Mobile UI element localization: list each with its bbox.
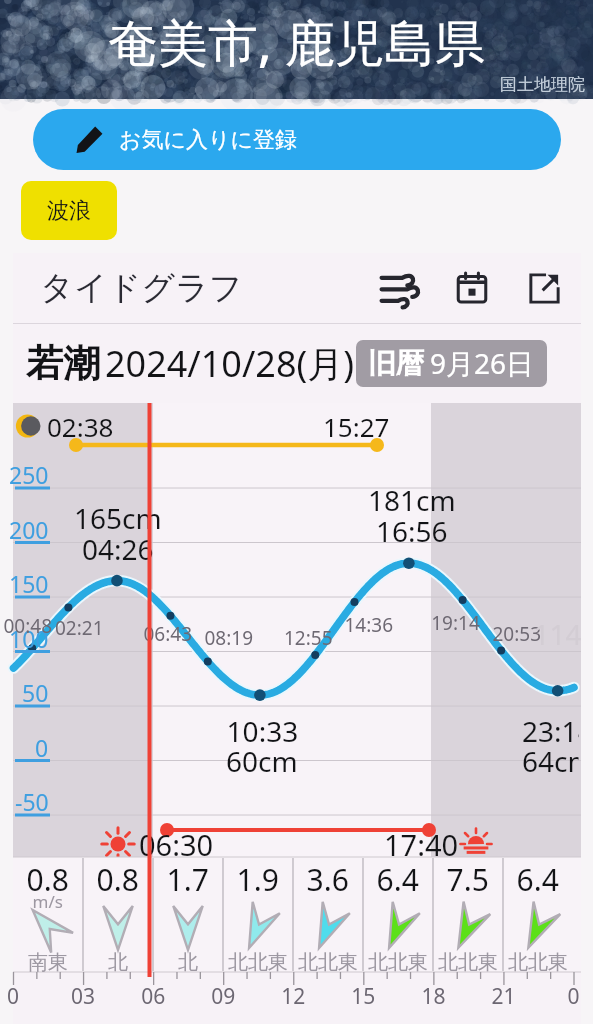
staticText: 旧暦: [368, 346, 424, 381]
button[interactable]: 波浪: [21, 181, 117, 240]
button[interactable]: お気に入りに登録: [33, 109, 561, 170]
staticText: 若潮: [26, 340, 100, 387]
button[interactable]: Wind: [374, 262, 426, 314]
staticText: 2024/10/28(月): [105, 339, 355, 388]
button[interactable]: Calendar: [446, 262, 498, 314]
staticText: 9月26日: [430, 344, 535, 382]
staticText: 国土地理院: [500, 74, 585, 95]
button[interactable]: Open in new: [518, 262, 570, 314]
staticText: 波浪: [47, 197, 91, 225]
staticText: 奄美市, 鹿児島県: [108, 8, 485, 76]
staticText: タイドグラフ: [40, 267, 243, 309]
staticText: お気に入りに登録: [119, 126, 298, 154]
